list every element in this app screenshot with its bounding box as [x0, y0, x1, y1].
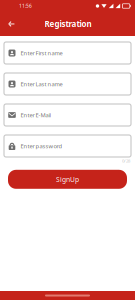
staticText: Enter First name: [20, 49, 62, 57]
staticText: 0/28: [122, 158, 130, 164]
staticText: Enter Last name: [20, 80, 62, 88]
staticText: 11:56: [19, 3, 32, 9]
button[interactable]: Back: [1, 12, 21, 36]
staticText: Enter E-Mail: [20, 111, 50, 119]
button[interactable]: SignUp: [8, 170, 127, 189]
staticText: Registration: [44, 19, 91, 29]
staticText: Enter password: [20, 142, 62, 150]
staticText: SignUp: [56, 175, 79, 184]
